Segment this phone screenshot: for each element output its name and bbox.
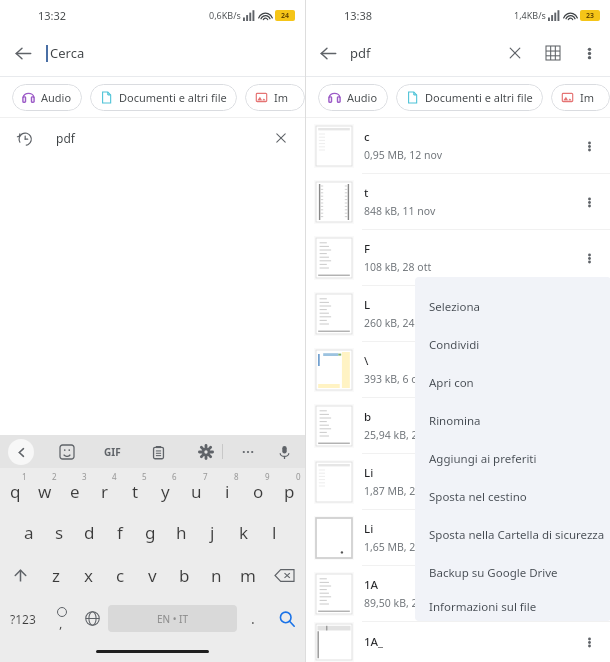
button[interactable]: Aggiungi ai preferiti: [415, 440, 610, 478]
staticText: w: [38, 480, 52, 503]
button[interactable]: L: [306, 286, 610, 341]
button[interactable]: F: [306, 230, 610, 285]
button[interactable]: Seleziona: [415, 288, 610, 326]
button[interactable]: c: [306, 118, 610, 173]
button[interactable]: c: [104, 554, 136, 597]
button[interactable]: Immagini: [551, 84, 610, 111]
button[interactable]: Audio: [12, 84, 82, 111]
button[interactable]: EN • IT: [108, 605, 237, 632]
button[interactable]: Back: [306, 30, 350, 76]
button[interactable]: Documenti e altri file: [396, 84, 543, 111]
button[interactable]: File options: [572, 185, 606, 219]
staticText: t: [364, 185, 369, 201]
button[interactable]: o: [243, 468, 274, 511]
button[interactable]: p: [274, 468, 305, 511]
button[interactable]: pdf: [0, 118, 305, 158]
button[interactable]: Rinomina: [415, 402, 610, 440]
button[interactable]: j: [197, 511, 228, 554]
button[interactable]: File options: [572, 625, 606, 659]
staticText: Rinomina: [429, 413, 481, 429]
button[interactable]: b: [306, 398, 610, 453]
button[interactable]: Backspace: [264, 554, 305, 597]
staticText: 3: [82, 471, 87, 482]
button[interactable]: File options: [572, 129, 606, 163]
button[interactable]: Li: [306, 510, 610, 565]
button[interactable]: .: [237, 597, 268, 640]
button[interactable]: File options: [572, 241, 606, 275]
button[interactable]: v: [136, 554, 168, 597]
staticText: pdf: [56, 130, 75, 146]
staticText: 848 kB, 11 nov: [364, 204, 436, 218]
button[interactable]: a: [14, 511, 44, 554]
button[interactable]: Sposta nella Cartella di sicurezza: [415, 516, 610, 554]
button[interactable]: Remove: [261, 118, 301, 158]
button[interactable]: GIF: [104, 445, 121, 459]
button[interactable]: More options: [572, 36, 606, 70]
button[interactable]: More: [237, 441, 259, 463]
button[interactable]: Backup su Google Drive: [415, 554, 610, 592]
staticText: .: [251, 609, 255, 628]
button[interactable]: m: [232, 554, 264, 597]
button[interactable]: h: [166, 511, 197, 554]
button[interactable]: t: [120, 468, 150, 511]
staticText: Audio: [347, 90, 378, 105]
button[interactable]: Immagini: [245, 84, 305, 111]
staticText: p: [284, 480, 295, 503]
button[interactable]: Audio: [318, 84, 388, 111]
button[interactable]: ,: [46, 597, 77, 640]
button[interactable]: File options: [572, 521, 606, 555]
button[interactable]: Clipboard: [147, 441, 169, 463]
button[interactable]: g: [135, 511, 166, 554]
button[interactable]: Search: [268, 597, 305, 640]
button[interactable]: i: [212, 468, 243, 511]
button[interactable]: l: [259, 511, 290, 554]
staticText: Sposta nel cestino: [429, 489, 527, 505]
button[interactable]: s: [44, 511, 74, 554]
staticText: x: [84, 564, 93, 587]
button[interactable]: Sticker: [56, 441, 78, 463]
button[interactable]: n: [200, 554, 232, 597]
staticText: Backup su Google Drive: [429, 565, 558, 581]
button[interactable]: y: [150, 468, 181, 511]
button[interactable]: Li: [306, 454, 610, 509]
staticText: c: [116, 564, 125, 587]
button[interactable]: Documenti e altri file: [90, 84, 237, 111]
button[interactable]: u: [181, 468, 212, 511]
button[interactable]: 1A: [306, 566, 610, 621]
button[interactable]: z: [40, 554, 72, 597]
button[interactable]: Informazioni sul file: [415, 592, 610, 621]
staticText: 1,87 MB, 27: [364, 484, 422, 498]
button[interactable]: f: [104, 511, 135, 554]
button[interactable]: w: [30, 468, 60, 511]
button[interactable]: Voice input: [273, 441, 295, 463]
button[interactable]: Grid view: [534, 34, 572, 72]
button[interactable]: Back: [8, 439, 34, 465]
staticText: 1,4KB/s: [514, 9, 546, 21]
button[interactable]: r: [90, 468, 120, 511]
button[interactable]: Settings: [195, 441, 217, 463]
button[interactable]: \: [306, 342, 610, 397]
button[interactable]: ?123: [0, 597, 46, 640]
staticText: 7: [203, 471, 208, 482]
button[interactable]: Sposta nel cestino: [415, 478, 610, 516]
button[interactable]: e: [60, 468, 90, 511]
button[interactable]: b: [168, 554, 200, 597]
button[interactable]: Apri con: [415, 364, 610, 402]
button[interactable]: Shift: [0, 554, 40, 597]
button[interactable]: Clear: [496, 34, 534, 72]
button[interactable]: d: [74, 511, 104, 554]
button[interactable]: Back: [0, 30, 46, 76]
button[interactable]: 1A_: [306, 622, 610, 662]
button[interactable]: k: [228, 511, 259, 554]
button[interactable]: Language: [77, 597, 108, 640]
button[interactable]: t: [306, 174, 610, 229]
staticText: Aggiungi ai preferiti: [429, 451, 537, 467]
button[interactable]: q: [0, 468, 30, 511]
button[interactable]: x: [72, 554, 104, 597]
button[interactable]: Condividi: [415, 326, 610, 364]
